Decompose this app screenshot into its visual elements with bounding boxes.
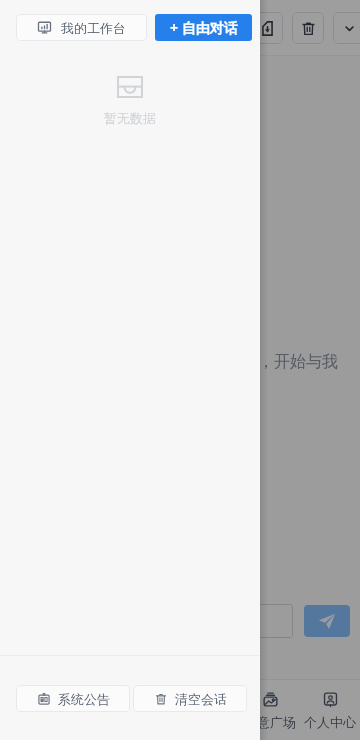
- button[interactable]: + 自由对话: [155, 14, 252, 41]
- button[interactable]: 创意广场: [240, 679, 300, 740]
- staticText: 清空会话: [175, 691, 227, 707]
- button[interactable]: Delete: [292, 12, 324, 44]
- button[interactable]: 我的文档: [180, 679, 240, 740]
- button[interactable]: Send: [304, 605, 350, 637]
- button[interactable]: 知识库: [120, 679, 180, 740]
- staticText: 暂无数据: [104, 110, 156, 126]
- button[interactable]: More: [333, 12, 360, 44]
- button[interactable]: 个人中心: [300, 679, 360, 740]
- staticText: 你好，开始与我: [226, 352, 338, 372]
- staticText: 个人中心: [304, 714, 356, 730]
- button[interactable]: Export: [251, 12, 283, 44]
- staticText: 创意广场: [244, 714, 296, 730]
- button[interactable]: Message input: [12, 604, 293, 638]
- staticText: + 自由对话: [170, 18, 238, 37]
- button[interactable]: 清空会话: [133, 685, 247, 712]
- button[interactable]: 我的工作台: [16, 14, 147, 41]
- staticText: 我的工作台: [61, 20, 126, 36]
- staticText: 系统公告: [58, 691, 110, 707]
- button[interactable]: 智能助手: [0, 679, 60, 740]
- button[interactable]: 应用中心: [60, 679, 120, 740]
- button[interactable]: 系统公告: [16, 685, 130, 712]
